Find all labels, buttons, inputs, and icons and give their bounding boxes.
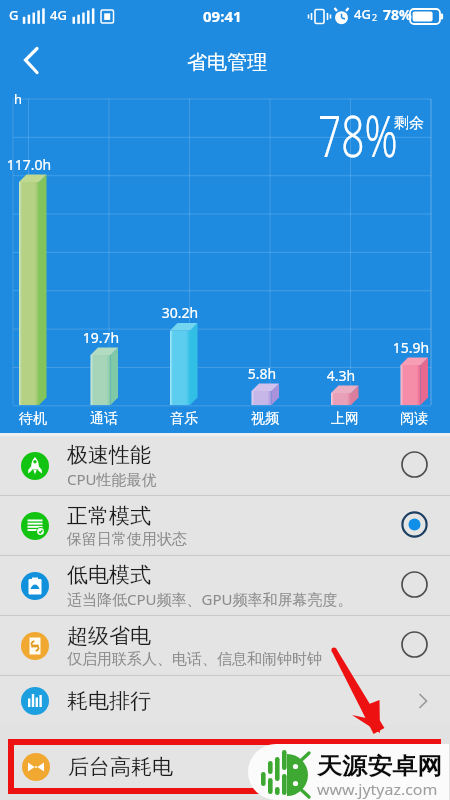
staticText: G <box>9 6 19 24</box>
staticText: 正常模式 <box>67 503 151 529</box>
staticText: 5.8h <box>232 364 292 383</box>
staticText: 阅读 <box>384 410 444 428</box>
staticText: h <box>14 90 23 108</box>
staticText: 极速性能 <box>67 442 151 468</box>
staticText: 待机 <box>3 410 63 428</box>
staticText: 09:41 <box>203 6 242 26</box>
staticText: 音乐 <box>154 410 214 428</box>
staticText: 2 <box>372 11 378 23</box>
staticText: 19.7h <box>71 328 131 347</box>
staticText: 4G <box>50 6 67 24</box>
staticText: CPU性能最优 <box>67 469 157 489</box>
staticText: 仅启用联系人、电话、信息和闹钟时钟 <box>67 650 322 669</box>
staticText: 视频 <box>235 410 295 428</box>
staticText: 上网 <box>315 410 375 428</box>
staticText: 适当降低CPU频率、GPU频率和屏幕亮度。 <box>67 589 353 609</box>
staticText: 117.0h <box>0 155 59 174</box>
button[interactable]: 后台高耗电 <box>14 745 435 788</box>
staticText: 30.2h <box>150 303 210 322</box>
staticText: 78% <box>318 95 398 174</box>
staticText: 78% <box>383 5 412 24</box>
staticText: www.jytyaz.com <box>317 780 438 799</box>
staticText: 省电管理 <box>187 50 267 75</box>
button[interactable]: 耗电排行 <box>0 676 450 725</box>
staticText: 天源安卓网 <box>317 752 442 781</box>
staticText: 低电模式 <box>67 562 151 588</box>
staticText: 4G <box>354 5 371 23</box>
button[interactable]: 超级省电 <box>0 616 450 675</box>
button[interactable]: 极速性能 <box>0 436 450 495</box>
staticText: 剩余 <box>394 114 424 133</box>
button[interactable]: 正常模式 <box>0 496 450 555</box>
staticText: 15.9h <box>381 338 441 357</box>
staticText: 4.3h <box>311 366 371 385</box>
staticText: 耗电排行 <box>67 688 151 714</box>
staticText: 超级省电 <box>67 623 151 649</box>
button[interactable]: 低电模式 <box>0 556 450 615</box>
staticText: 通话 <box>74 410 134 428</box>
button[interactable]: Back <box>7 36 55 84</box>
staticText: 保留日常使用状态 <box>67 530 187 549</box>
staticText: 后台高耗电 <box>68 754 173 780</box>
